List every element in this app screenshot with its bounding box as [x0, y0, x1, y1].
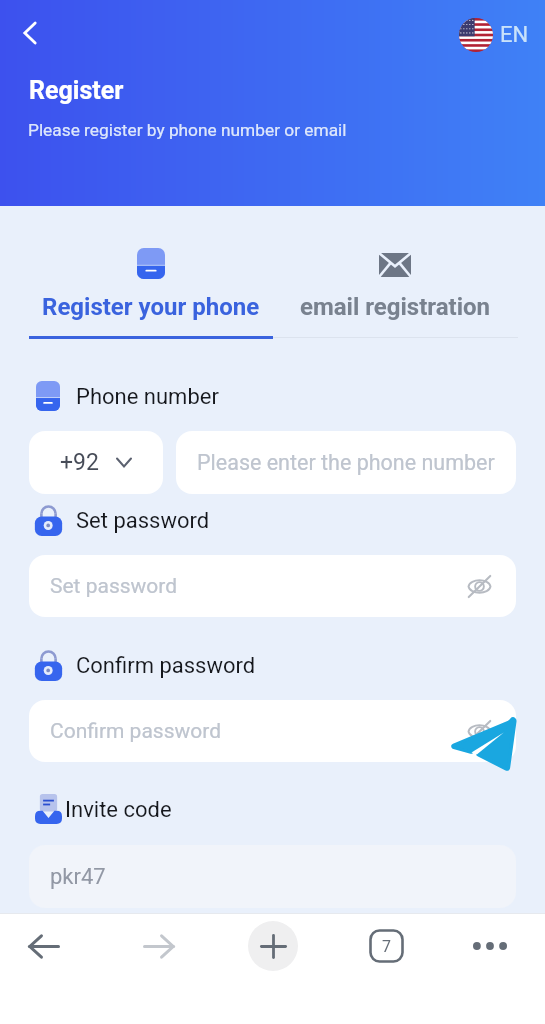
- staticText: Confirm password: [76, 653, 256, 679]
- button[interactable]: +92: [29, 431, 163, 494]
- button[interactable]: email registration: [273, 240, 517, 336]
- staticText: +92: [60, 449, 99, 476]
- button[interactable]: Show password: [467, 720, 492, 743]
- staticText: email registration: [300, 293, 491, 321]
- button[interactable]: pkr47: [29, 845, 516, 908]
- button[interactable]: Back: [8, 913, 79, 979]
- button[interactable]: Please enter the phone number: [176, 431, 516, 494]
- staticText: pkr47: [50, 864, 106, 890]
- staticText: Set password: [50, 574, 178, 599]
- button[interactable]: Register your phone: [29, 240, 273, 336]
- button[interactable]: EN: [459, 15, 529, 55]
- staticText: Please register by phone number or email: [28, 120, 347, 140]
- button[interactable]: Show password: [467, 575, 492, 598]
- button[interactable]: Confirm password: [29, 700, 516, 762]
- staticText: Register your phone: [42, 293, 260, 321]
- button[interactable]: Tabs: [351, 913, 421, 979]
- staticText: Invite code: [65, 797, 172, 823]
- staticText: EN: [500, 22, 529, 48]
- button[interactable]: New tab: [238, 913, 308, 979]
- staticText: Register: [29, 76, 124, 105]
- button[interactable]: Back: [14, 17, 46, 49]
- staticText: 7: [382, 937, 391, 956]
- staticText: Set password: [76, 508, 210, 534]
- button[interactable]: More options: [455, 913, 525, 979]
- button[interactable]: Forward: [123, 913, 194, 979]
- staticText: Phone number: [76, 384, 219, 410]
- staticText: Confirm password: [50, 719, 222, 744]
- staticText: Please enter the phone number: [197, 450, 495, 475]
- button[interactable]: Set password: [29, 555, 516, 617]
